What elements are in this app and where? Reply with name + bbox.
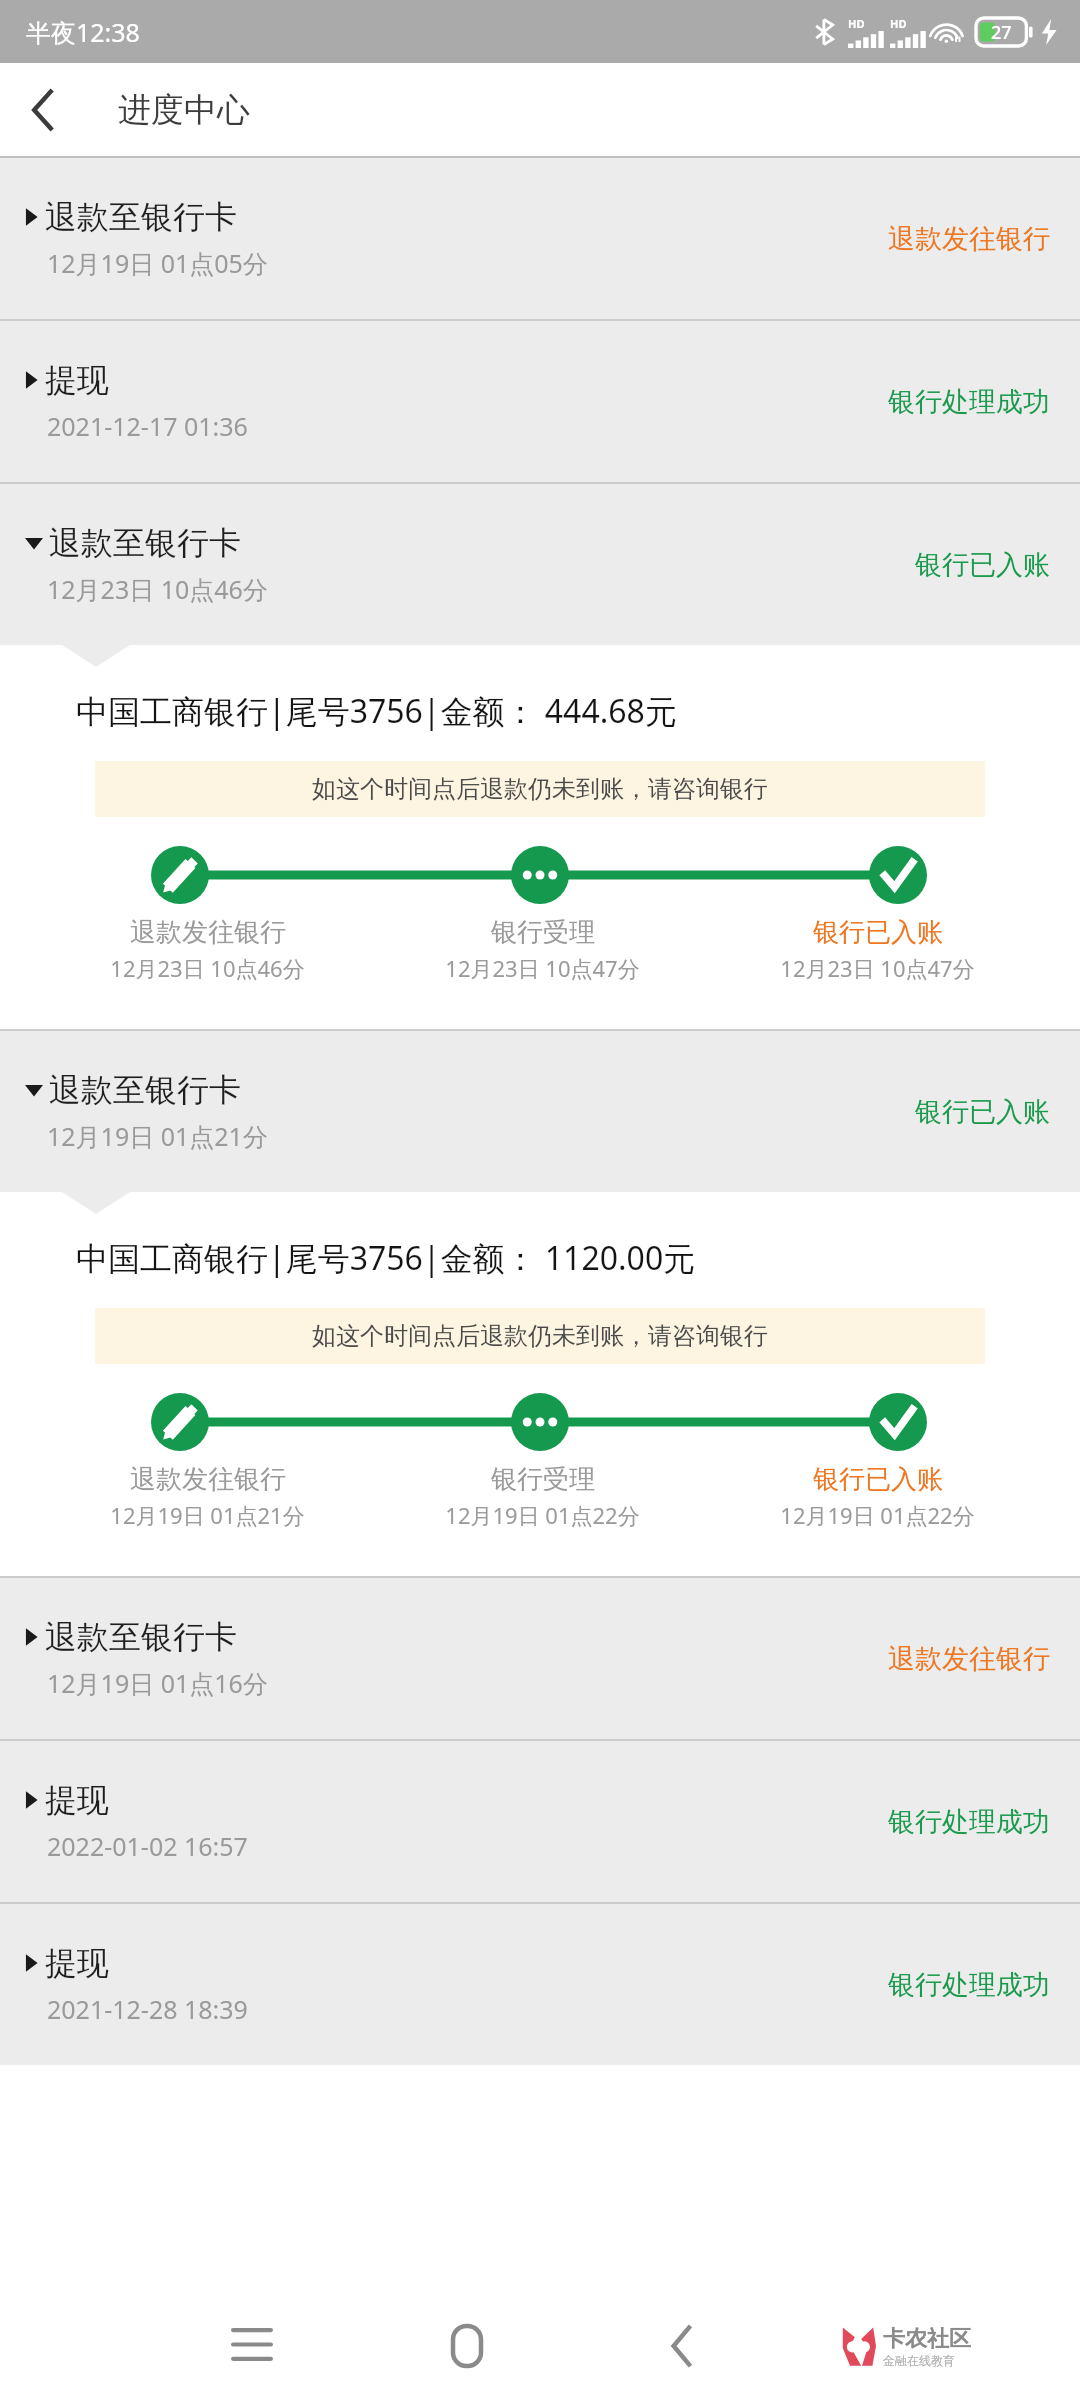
staticText: 提现	[45, 360, 109, 400]
button[interactable]: Back	[622, 2292, 742, 2400]
staticText: 退款发往银行	[130, 1463, 286, 1496]
staticText: 12月19日 01点21分	[110, 1500, 305, 1530]
button[interactable]: Recent apps	[192, 2292, 312, 2400]
staticText: 银行已入账	[813, 916, 943, 949]
staticText: 12月23日 10点47分	[445, 953, 640, 983]
staticText: 12月19日 01点22分	[780, 1500, 975, 1530]
button[interactable]: 提现	[0, 1904, 1080, 2065]
staticText: 退款发往银行	[888, 1642, 1050, 1676]
staticText: 半夜12:38	[26, 15, 140, 49]
staticText: 中国工商银行|尾号3756|金额： 444.68元	[76, 689, 1080, 733]
staticText: 银行处理成功	[888, 1805, 1050, 1839]
button[interactable]: 退款至银行卡	[0, 484, 1080, 645]
staticText: 银行受理	[491, 1463, 595, 1496]
staticText: 12月23日 10点46分	[47, 572, 268, 606]
staticText: 12月23日 10点46分	[110, 953, 305, 983]
staticText: 2022-01-02 16:57	[47, 1829, 248, 1863]
staticText: 12月19日 01点05分	[47, 246, 268, 280]
staticText: 12月19日 01点21分	[47, 1119, 268, 1153]
staticText: 银行已入账	[915, 1095, 1050, 1129]
staticText: 退款至银行卡	[49, 1070, 241, 1110]
staticText: 退款至银行卡	[49, 523, 241, 563]
staticText: HD	[890, 16, 907, 31]
staticText: 退款至银行卡	[45, 1617, 237, 1657]
staticText: 如这个时间点后退款仍未到账，请咨询银行	[312, 1321, 768, 1351]
button[interactable]: 退款至银行卡	[0, 1578, 1080, 1739]
button[interactable]: 退款至银行卡	[0, 1031, 1080, 1192]
staticText: 进度中心	[118, 89, 250, 131]
staticText: 银行处理成功	[888, 385, 1050, 419]
button[interactable]: 提现	[0, 1741, 1080, 1902]
staticText: 中国工商银行|尾号3756|金额： 1120.00元	[76, 1236, 1080, 1280]
staticText: 金融在线教育	[883, 2353, 955, 2368]
staticText: 卡农社区	[883, 2325, 971, 2353]
staticText: 12月19日 01点16分	[47, 1666, 268, 1700]
staticText: 27	[991, 20, 1012, 45]
staticText: HD	[848, 16, 865, 31]
staticText: 银行已入账	[813, 1463, 943, 1496]
staticText: 银行已入账	[915, 548, 1050, 582]
button[interactable]: 提现	[0, 321, 1080, 482]
button[interactable]: 退款至银行卡	[0, 158, 1080, 319]
staticText: 2021-12-17 01:36	[47, 409, 248, 443]
staticText: 2021-12-28 18:39	[47, 1992, 248, 2026]
staticText: 提现	[45, 1780, 109, 1820]
staticText: 退款发往银行	[888, 222, 1050, 256]
staticText: 退款至银行卡	[45, 197, 237, 237]
staticText: 如这个时间点后退款仍未到账，请咨询银行	[312, 774, 768, 804]
staticText: 银行处理成功	[888, 1968, 1050, 2002]
staticText: 提现	[45, 1943, 109, 1983]
button[interactable]: Back	[0, 63, 86, 156]
staticText: 12月23日 10点47分	[780, 953, 975, 983]
button[interactable]: Home	[407, 2292, 527, 2400]
staticText: 退款发往银行	[130, 916, 286, 949]
staticText: 银行受理	[491, 916, 595, 949]
staticText: 12月19日 01点22分	[445, 1500, 640, 1530]
